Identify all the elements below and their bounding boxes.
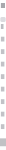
button[interactable] [0,70,6,83]
button[interactable] [0,120,6,133]
button[interactable] [0,33,6,45]
button[interactable]: Tab [0,138,2,146]
button[interactable] [0,58,6,70]
button[interactable]: Tab [4,138,6,146]
button[interactable] [0,45,6,58]
button[interactable] [0,95,6,108]
button[interactable] [0,83,6,95]
button[interactable] [0,108,6,120]
button[interactable]: Tab [2,138,4,146]
